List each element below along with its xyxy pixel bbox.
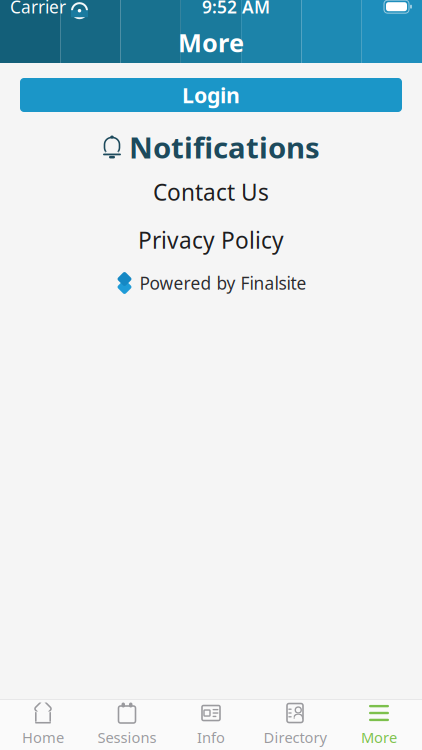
button[interactable]: More [337, 700, 421, 750]
staticText: 9:52 AM [202, 0, 270, 18]
staticText: Home [22, 727, 64, 747]
button[interactable]: Sessions [85, 700, 169, 750]
staticText: Sessions [97, 727, 156, 747]
staticText: Contact Us [153, 177, 269, 207]
button[interactable]: Login [20, 78, 402, 112]
button[interactable]: Info [169, 700, 253, 750]
button[interactable]: Notifications [20, 128, 402, 166]
button[interactable]: Powered by Finalsite [20, 269, 402, 297]
button[interactable]: Home [1, 700, 85, 750]
staticText: Carrier [10, 0, 66, 18]
button[interactable]: Directory [253, 700, 337, 750]
staticText: Notifications [129, 127, 320, 166]
staticText: Login [182, 81, 240, 109]
button[interactable]: Contact Us [20, 177, 402, 207]
staticText: More [361, 727, 397, 747]
staticText: Info [197, 727, 225, 747]
staticText: Powered by Finalsite [139, 271, 306, 294]
button[interactable]: Privacy Policy [20, 225, 402, 255]
staticText: Directory [263, 727, 326, 747]
staticText: Privacy Policy [138, 225, 284, 255]
staticText: More [178, 26, 244, 59]
